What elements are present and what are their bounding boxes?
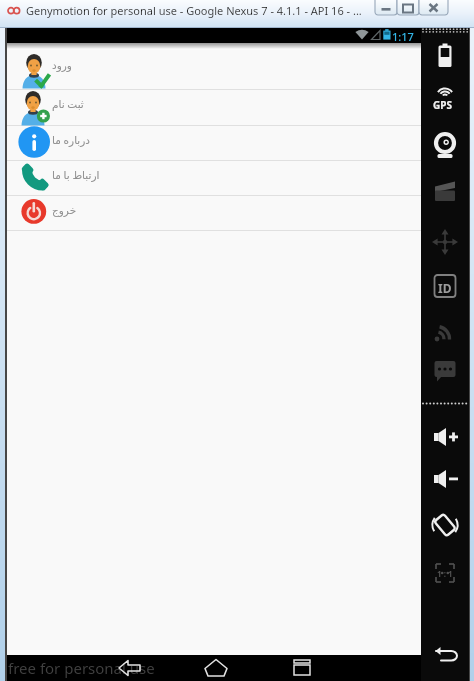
button[interactable] [423,420,467,454]
staticText: GPS [433,98,452,112]
button[interactable] [423,640,467,674]
staticText: ورود [52,59,72,71]
button[interactable] [423,42,467,76]
staticText: free for personal use [8,658,155,678]
staticText: خروج [52,204,77,216]
button[interactable]: ثبت نام [7,89,421,125]
button[interactable] [110,655,146,681]
button[interactable] [423,126,467,160]
staticText: 1 : 1 [437,568,453,579]
button[interactable] [285,655,321,681]
button[interactable]: ارتباط با ما [7,160,421,195]
button[interactable] [423,178,467,212]
button[interactable] [423,268,467,302]
button[interactable] [419,0,448,15]
button[interactable] [423,355,467,389]
button[interactable] [423,314,467,348]
staticText: ثبت نام [52,97,84,111]
button[interactable] [423,80,467,114]
staticText: ارتباط با ما [52,168,100,182]
button[interactable] [423,552,467,586]
button[interactable] [397,0,419,15]
button[interactable] [423,226,467,260]
button[interactable] [375,0,397,15]
button[interactable]: درباره ما [7,125,421,161]
button[interactable] [423,505,467,539]
staticText: درباره ما [52,133,90,147]
staticText: ID [438,280,452,296]
button[interactable]: ورود [7,46,421,89]
button[interactable] [423,462,467,496]
staticText: 1:17 [392,29,414,44]
button[interactable] [198,655,234,681]
button[interactable]: خروج [7,195,421,230]
staticText: Genymotion for personal use - Google Nex… [26,3,362,18]
